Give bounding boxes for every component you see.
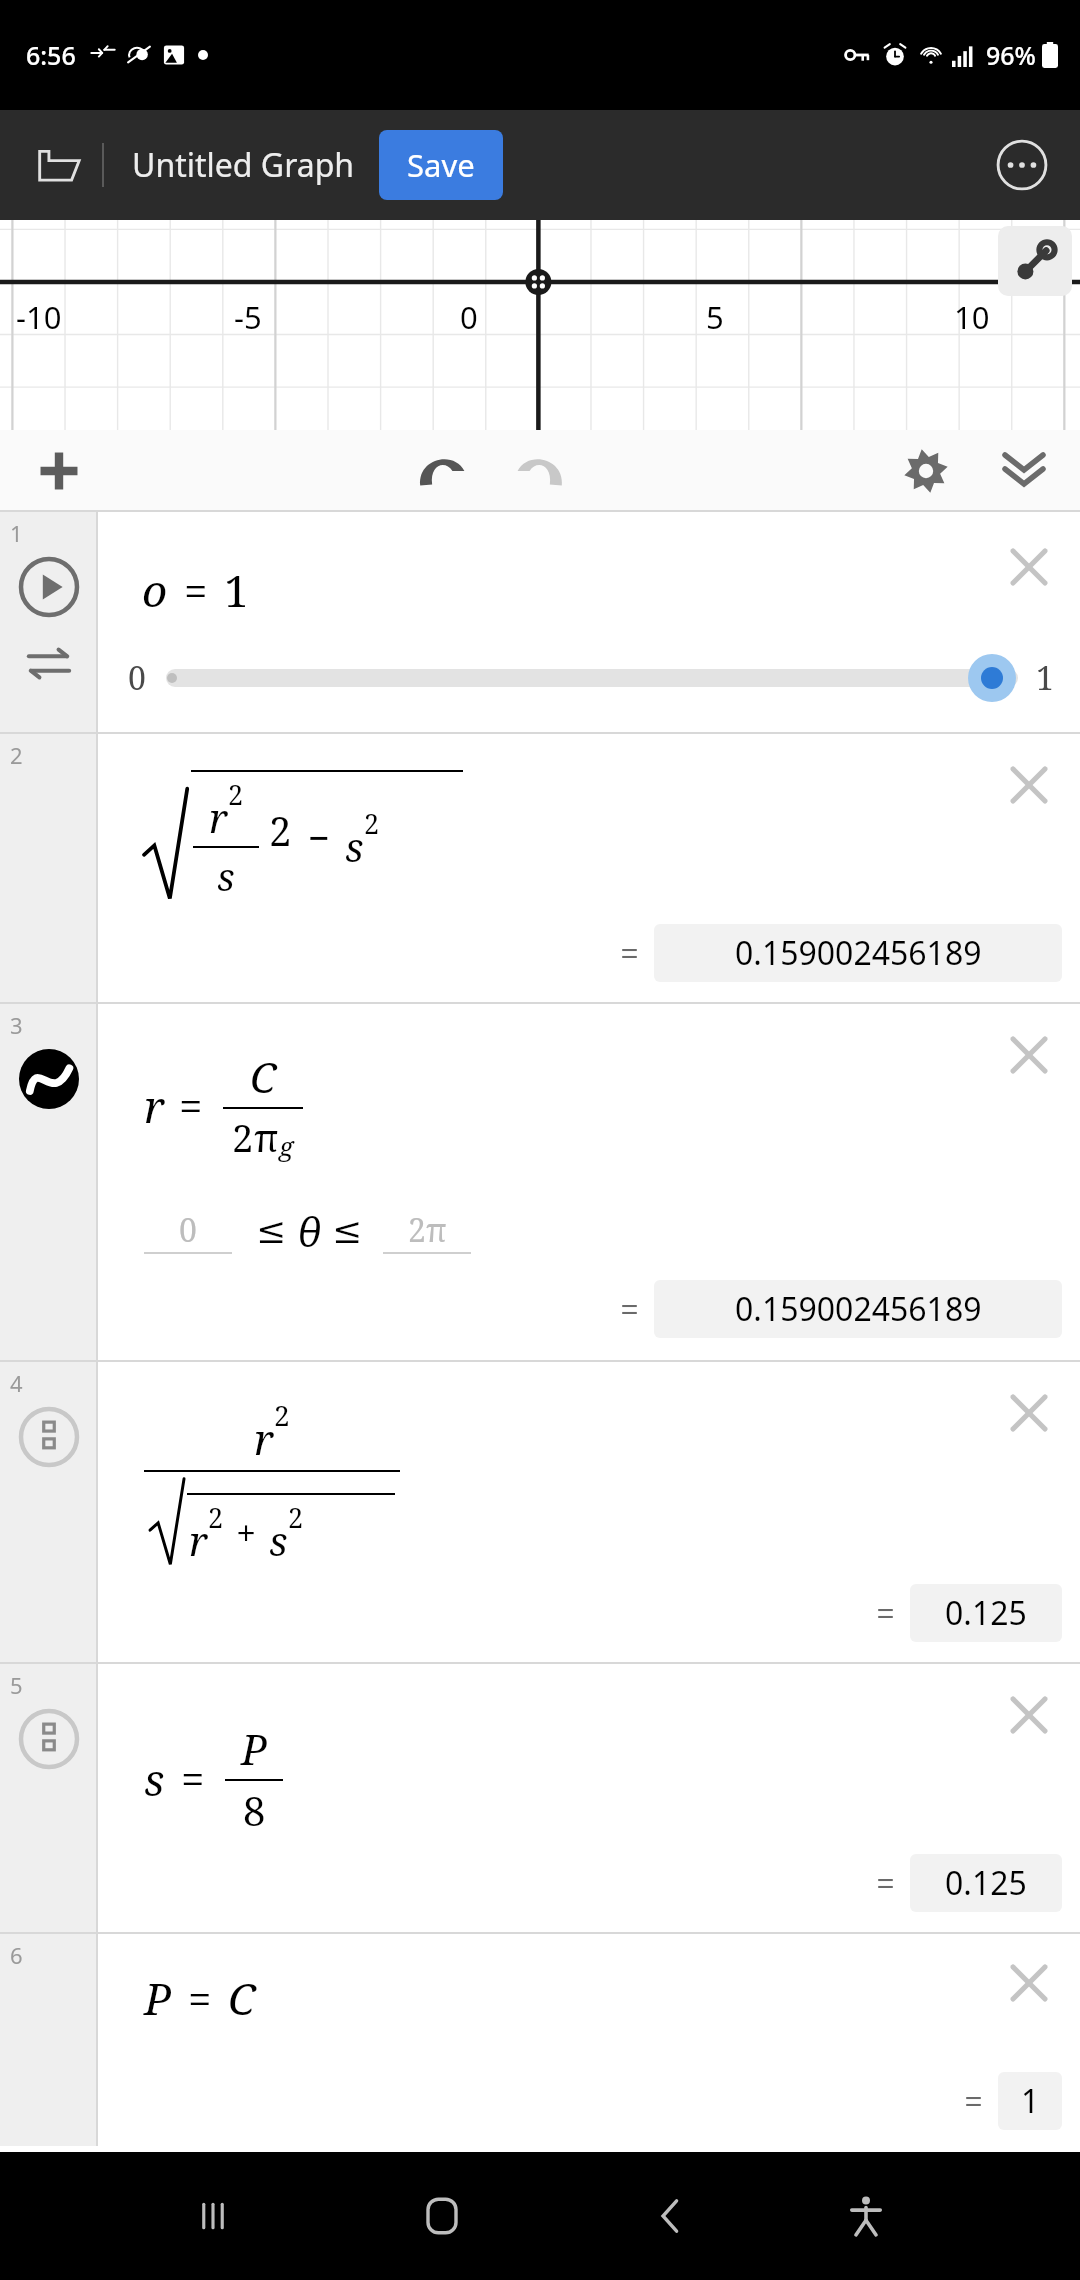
staticText: 2 [364,805,380,842]
staticText: 0 [179,1208,197,1252]
staticText: P [241,1720,268,1777]
staticText: 2 [208,1499,224,1536]
staticText: 0.159002456189 [735,931,982,975]
button[interactable]: Delete expression [994,1680,1064,1750]
staticText: 10 [954,296,990,338]
button[interactable]: Polar curve color [12,1042,86,1116]
button[interactable]: Save [379,130,503,200]
button[interactable]: Expression options [12,1400,86,1474]
staticText: 2 [228,776,244,813]
staticText: = [181,1750,205,1807]
button[interactable]: Untitled Graph [132,143,355,187]
staticText: 3 [10,1010,23,1040]
staticText: 6:56 [26,38,76,72]
staticText: 4 [10,1368,23,1398]
staticText: 2π [408,1208,447,1252]
staticText: 1 [1021,2079,1040,2123]
staticText: 1 [224,560,249,620]
staticText: C [250,1048,277,1105]
button[interactable]: Delete expression [994,1020,1064,1090]
button[interactable]: 0.159002456189 [654,924,1062,982]
button[interactable]: More options [990,133,1054,197]
staticText: + [236,1508,257,1557]
staticText: = [179,1077,203,1134]
button[interactable] [166,652,1018,704]
button[interactable]: Add expression [22,434,96,508]
button[interactable]: Home [394,2168,490,2264]
staticText: = [620,1286,640,1332]
staticText: = [188,1970,212,2027]
staticText: 2 [269,803,292,857]
button[interactable]: 0.125 [910,1854,1062,1912]
staticText: -10 [16,296,62,338]
button[interactable]: Accessibility [818,2168,914,2264]
staticText: 6 [10,1940,23,1970]
staticText: 0.125 [945,1591,1027,1635]
button[interactable]: Redo [499,430,583,512]
button[interactable]: Settings [886,431,966,511]
button[interactable]: Delete expression [994,1948,1064,2018]
staticText: r [254,1410,274,1467]
staticText: 1 [1036,656,1054,700]
button[interactable]: Collapse expressions [984,431,1064,511]
button[interactable]: Play slider [12,550,86,624]
staticText: -5 [234,296,262,338]
staticText: P [144,1968,172,2028]
staticText: 1 [10,518,23,548]
staticText: 2 [288,1499,304,1536]
staticText: s [345,819,364,873]
staticText: π [254,1111,279,1163]
staticText: ≤ [332,1210,363,1252]
staticText: 0 [460,296,478,338]
staticText: = [184,562,208,619]
button[interactable]: Graph settings wrench [998,226,1072,296]
button[interactable]: 0.159002456189 [654,1280,1062,1338]
staticText: 2 [232,1111,254,1163]
button[interactable]: 0.125 [910,1584,1062,1642]
staticText: = [620,930,640,976]
button[interactable]: Delete expression [994,1378,1064,1448]
staticText: s [217,850,235,902]
staticText: 0.125 [945,1861,1027,1905]
staticText: 5 [706,296,724,338]
staticText: 8 [243,1783,266,1837]
button[interactable]: Undo [399,430,483,512]
staticText: o [142,560,168,620]
staticText: θ [297,1204,322,1258]
staticText: 96% [986,38,1036,72]
button[interactable]: 1 [998,2072,1062,2130]
button[interactable]: Open graph folder [26,132,92,198]
button[interactable]: Convert to table [16,630,82,696]
staticText: Save [407,144,475,186]
staticText: r [209,790,228,844]
staticText: − [308,811,331,863]
staticText: = [964,2078,984,2124]
button[interactable]: Delete expression [994,532,1064,602]
staticText: ≤ [256,1210,287,1252]
staticText: 2 [274,1396,290,1434]
button[interactable]: Expression options [12,1702,86,1776]
staticText: 2 [10,740,23,770]
button[interactable]: Back [623,2168,719,2264]
staticText: = [876,1590,896,1636]
staticText: 5 [10,1670,23,1700]
staticText: r [189,1513,208,1567]
staticText: C [228,1968,256,2028]
staticText: 0.159002456189 [735,1287,982,1331]
staticText: g [279,1128,294,1163]
button[interactable]: Delete expression [994,750,1064,820]
staticText: r [144,1076,165,1136]
staticText: s [144,1749,165,1809]
staticText: s [269,1513,288,1567]
button[interactable]: Recent apps [165,2168,261,2264]
staticText: = [876,1860,896,1906]
staticText: 0 [128,656,146,700]
